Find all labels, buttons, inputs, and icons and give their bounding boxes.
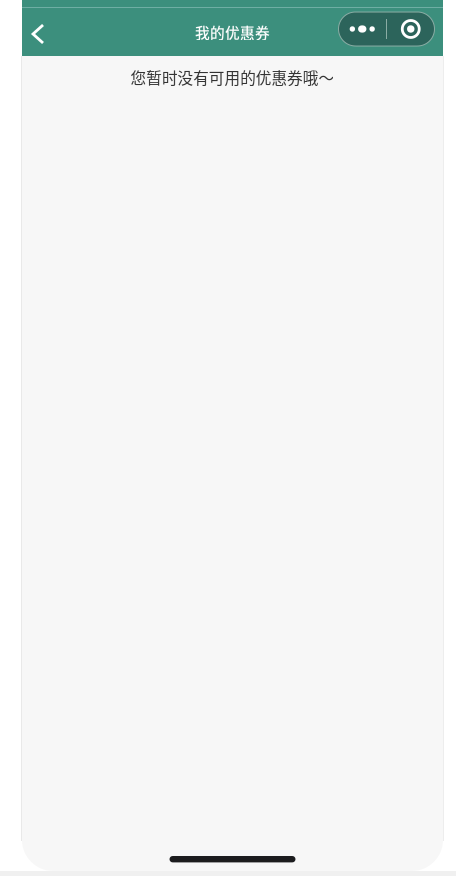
button[interactable]: Close mini program	[387, 12, 434, 46]
button[interactable]: More options	[338, 12, 386, 46]
button[interactable]: Back	[22, 15, 64, 53]
staticText: 您暂时没有可用的优惠券哦～	[131, 66, 334, 89]
staticText: 我的优惠券	[195, 21, 270, 43]
